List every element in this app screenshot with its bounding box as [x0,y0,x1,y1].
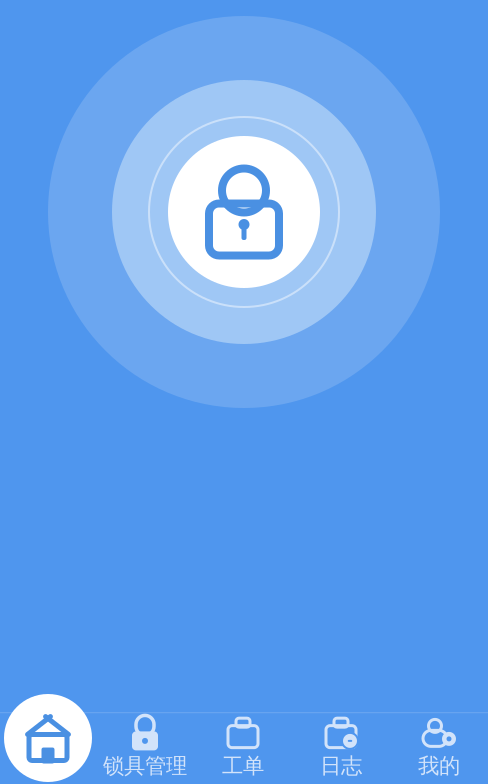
button[interactable]: 首页 [4,694,92,782]
button[interactable]: 日志 [292,711,390,784]
staticText: 日志 [320,753,362,779]
staticText: 我的 [418,753,460,779]
staticText: 工单 [222,753,264,779]
button[interactable]: 工单 [194,711,292,784]
button[interactable]: 锁具管理 [96,711,194,784]
button[interactable]: 我的 [390,711,488,784]
staticText: 锁具管理 [103,753,187,779]
